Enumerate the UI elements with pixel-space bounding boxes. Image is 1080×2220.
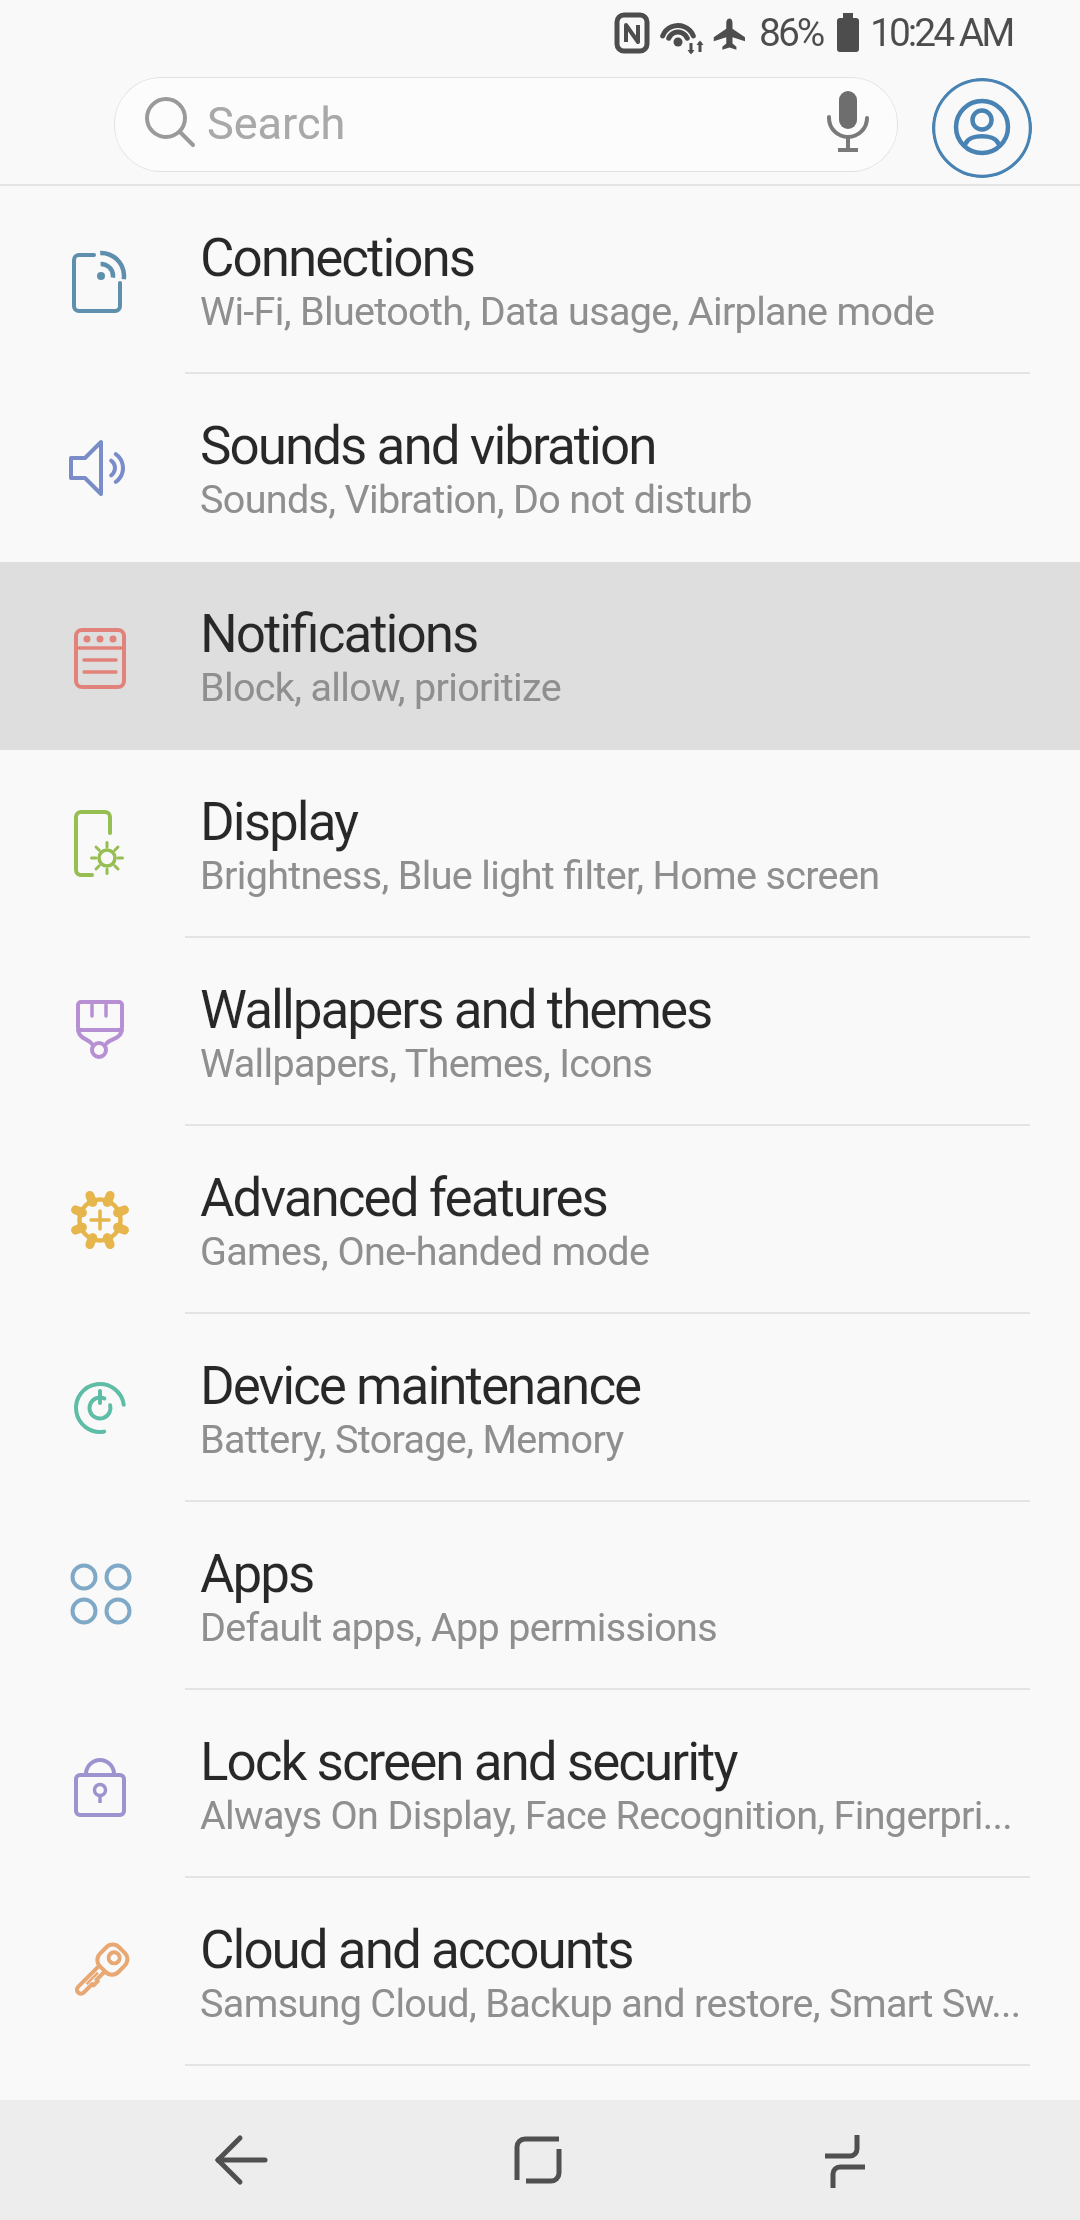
staticText: Notifications (200, 603, 478, 665)
staticText: Always On Display, Face Recognition, Fin… (200, 1792, 1012, 1838)
staticText: Brightness, Blue light filter, Home scre… (200, 852, 880, 898)
button[interactable]: Sounds and vibration (0, 374, 1080, 562)
button[interactable]: Notifications (0, 562, 1080, 750)
button[interactable] (161, 2100, 321, 2220)
staticText: Device maintenance (200, 1355, 641, 1417)
staticText: Search (207, 97, 346, 150)
staticText: Advanced features (200, 1167, 607, 1229)
staticText: Connections (200, 227, 475, 289)
button[interactable] (458, 2100, 618, 2220)
button[interactable]: Device maintenance (0, 1314, 1080, 1502)
button[interactable]: Cloud and accounts (0, 1878, 1080, 2066)
button[interactable]: Wallpapers and themes (0, 938, 1080, 1126)
staticText: Games, One-handed mode (200, 1228, 650, 1274)
staticText: Wi-Fi, Bluetooth, Data usage, Airplane m… (200, 288, 935, 334)
staticText: Lock screen and security (200, 1731, 737, 1793)
button[interactable]: Lock screen and security (0, 1690, 1080, 1878)
staticText: 86% (759, 10, 823, 56)
staticText: Default apps, App permissions (200, 1604, 717, 1650)
button[interactable] (932, 78, 1032, 178)
staticText: 10:24 AM (870, 10, 1013, 56)
staticText: Wallpapers, Themes, Icons (200, 1040, 653, 1086)
staticText: Block, allow, prioritize (200, 664, 561, 710)
staticText: Wallpapers and themes (200, 979, 712, 1041)
staticText: Display (200, 791, 358, 853)
staticText: Cloud and accounts (200, 1919, 633, 1981)
staticText: Sounds and vibration (200, 415, 656, 477)
button[interactable]: Display (0, 750, 1080, 938)
staticText: Battery, Storage, Memory (200, 1416, 624, 1462)
button[interactable] (765, 2100, 925, 2220)
staticText: Sounds, Vibration, Do not disturb (200, 476, 752, 522)
button[interactable]: Apps (0, 1502, 1080, 1690)
button[interactable]: Search (114, 77, 898, 172)
button[interactable]: Connections (0, 186, 1080, 374)
staticText: Samsung Cloud, Backup and restore, Smart… (200, 1980, 1021, 2026)
button[interactable]: Advanced features (0, 1126, 1080, 1314)
staticText: Apps (200, 1543, 314, 1605)
